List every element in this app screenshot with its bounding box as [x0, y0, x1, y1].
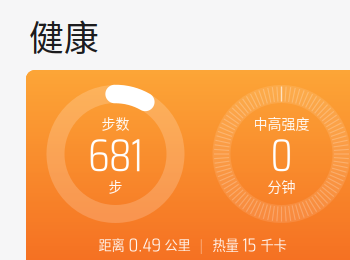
staticText: 健康 — [29, 11, 99, 61]
staticText: 0 — [270, 120, 292, 191]
staticText: 步 — [108, 176, 122, 196]
staticText: 步数 — [101, 113, 129, 133]
staticText: 681 — [88, 120, 143, 191]
staticText: | — [190, 235, 212, 254]
staticText: 千卡 — [260, 235, 286, 254]
button[interactable]: 步数 — [26, 70, 350, 260]
button[interactable]: 健康 — [0, 0, 200, 40]
staticText: 中高强度 — [253, 113, 309, 133]
staticText: 15 — [238, 229, 260, 260]
staticText: 公里 — [164, 235, 190, 254]
staticText: 0.49 — [124, 229, 164, 260]
staticText: 距离 — [98, 235, 124, 254]
staticText: 热量 — [212, 235, 238, 254]
staticText: 分钟 — [267, 176, 295, 196]
